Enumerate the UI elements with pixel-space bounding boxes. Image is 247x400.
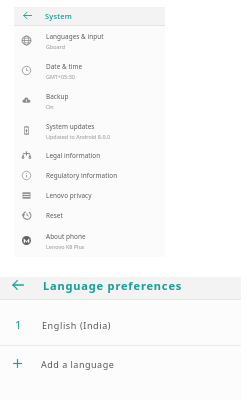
button[interactable]: Back bbox=[14, 7, 165, 25]
staticText: About phone bbox=[46, 232, 86, 241]
button[interactable]: Date & time bbox=[14, 55, 165, 85]
staticText: GMT+05:30 bbox=[46, 73, 75, 80]
button[interactable]: Regulatory information bbox=[14, 165, 165, 185]
button[interactable]: Add a language bbox=[0, 346, 241, 387]
button[interactable]: Legal information bbox=[14, 145, 165, 165]
button[interactable]: System updates bbox=[14, 115, 165, 145]
staticText: Language preferences bbox=[43, 278, 183, 293]
staticText: Lenovo privacy bbox=[46, 191, 92, 200]
button[interactable]: About phone bbox=[14, 225, 165, 255]
staticText: Regulatory information bbox=[46, 171, 118, 180]
staticText: Updated to Android 8.0.0 bbox=[46, 133, 111, 140]
button[interactable]: Reset bbox=[14, 205, 165, 225]
staticText: Backup bbox=[46, 92, 69, 101]
button[interactable]: Lenovo privacy bbox=[14, 185, 165, 205]
staticText: English (India) bbox=[42, 319, 112, 331]
button[interactable]: Back bbox=[14, 7, 36, 25]
staticText: 1 bbox=[15, 317, 22, 332]
button[interactable]: Languages & input bbox=[14, 25, 165, 55]
staticText: Lenovo K8 Plus bbox=[46, 243, 85, 250]
button[interactable]: 1 bbox=[0, 300, 241, 345]
staticText: Languages & input bbox=[46, 32, 104, 41]
staticText: Legal information bbox=[46, 151, 101, 160]
staticText: Add a language bbox=[41, 358, 115, 370]
staticText: On bbox=[46, 103, 54, 110]
button[interactable]: Back bbox=[0, 277, 241, 299]
staticText: System bbox=[45, 11, 72, 21]
button[interactable]: Back bbox=[0, 277, 35, 293]
staticText: Gboard bbox=[46, 43, 66, 50]
staticText: Date & time bbox=[46, 62, 83, 71]
staticText: System updates bbox=[46, 122, 95, 131]
button[interactable]: Backup bbox=[14, 85, 165, 115]
staticText: Reset bbox=[46, 211, 63, 220]
